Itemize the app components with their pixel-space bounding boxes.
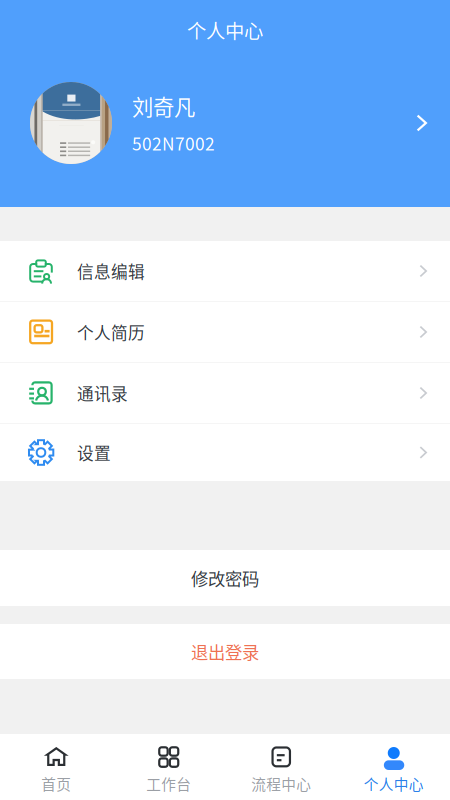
button[interactable]: 工作台 xyxy=(112,734,225,800)
button[interactable]: 流程中心 xyxy=(225,734,337,800)
staticText: 修改密码 xyxy=(191,565,259,591)
staticText: 通讯录 xyxy=(77,381,128,405)
button[interactable]: 个人简历 xyxy=(0,302,450,362)
button[interactable]: 信息编辑 xyxy=(0,241,450,301)
staticText: 退出登录 xyxy=(191,639,259,664)
button[interactable]: 刘奇凡 xyxy=(0,82,450,164)
staticText: 个人简历 xyxy=(77,320,145,344)
staticText: 首页 xyxy=(41,773,71,794)
button[interactable]: 个人中心 xyxy=(337,734,450,800)
button[interactable]: 通讯录 xyxy=(0,363,450,423)
staticText: 个人中心 xyxy=(364,773,424,794)
staticText: 流程中心 xyxy=(251,773,311,794)
staticText: 502N7002 xyxy=(132,130,215,156)
staticText: 设置 xyxy=(77,440,111,464)
staticText: 工作台 xyxy=(146,773,191,794)
button[interactable]: 退出登录 xyxy=(0,624,450,679)
button[interactable]: 修改密码 xyxy=(0,550,450,606)
staticText: 刘奇凡 xyxy=(132,91,195,121)
button[interactable]: 设置 xyxy=(0,424,450,481)
staticText: 个人中心 xyxy=(187,16,263,44)
staticText: 信息编辑 xyxy=(77,259,145,283)
button[interactable]: 首页 xyxy=(0,734,112,800)
